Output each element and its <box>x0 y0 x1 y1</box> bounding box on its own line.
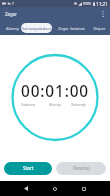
staticText: Resetuj <box>73 165 90 172</box>
button[interactable]: Samowyzwalacz <box>21 23 52 33</box>
button[interactable]: Alarmy <box>1 21 23 35</box>
button[interactable]: More options <box>96 7 110 21</box>
button[interactable]: Recent apps <box>76 181 91 196</box>
staticText: Zegar <box>5 11 17 17</box>
button[interactable]: Back <box>18 181 33 196</box>
staticText: 00:01:00 <box>21 81 89 102</box>
staticText: 99% <box>83 1 92 7</box>
staticText: Start <box>23 165 34 172</box>
button[interactable]: Start <box>4 162 52 175</box>
staticText: Alarmy <box>6 26 19 31</box>
button[interactable]: Stoper <box>90 21 109 35</box>
staticText: Minuty <box>49 102 61 107</box>
button[interactable]: Resetuj <box>56 162 106 175</box>
button[interactable]: Zegar światow <box>55 21 88 35</box>
staticText: 11:21 <box>96 1 108 7</box>
staticText: Stoper <box>93 26 106 31</box>
staticText: Godzina <box>21 102 35 107</box>
button[interactable]: Home <box>47 181 62 196</box>
staticText: Sekundy <box>71 102 86 107</box>
staticText: Zegar światow <box>58 26 85 31</box>
staticText: Samowyzwalacz <box>22 26 52 31</box>
